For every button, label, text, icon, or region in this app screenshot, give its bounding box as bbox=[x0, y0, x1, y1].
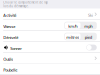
staticText: mph bbox=[84, 23, 92, 29]
button[interactable]: Activité bbox=[0, 8, 100, 20]
button[interactable]: Outils bbox=[0, 53, 100, 63]
staticText: Choisir le comportement de l'ap bbox=[3, 1, 48, 4]
button[interactable]: mph bbox=[80, 22, 96, 29]
button[interactable]: mètres bbox=[65, 33, 80, 40]
staticText: pied bbox=[85, 34, 92, 40]
button[interactable]: Sonner bbox=[0, 42, 100, 53]
staticText: Outils bbox=[3, 56, 13, 62]
button[interactable]: Poubelle bbox=[0, 63, 100, 74]
staticText: Poubelle bbox=[3, 67, 17, 72]
button[interactable]: km/h bbox=[65, 22, 80, 29]
button[interactable]: pied bbox=[80, 33, 96, 40]
staticText: km/h bbox=[68, 23, 77, 29]
staticText: Dénivelé bbox=[3, 35, 18, 40]
staticText: mètres bbox=[66, 34, 79, 40]
button[interactable]: Vitesse bbox=[0, 20, 100, 31]
staticText: Ski bbox=[88, 12, 93, 18]
staticText: lors du démarrage. bbox=[3, 4, 29, 8]
staticText: Activité bbox=[3, 12, 16, 18]
staticText: Vitesse bbox=[3, 24, 15, 29]
staticText: Sonner bbox=[10, 46, 22, 51]
button[interactable]: Dénivelé bbox=[0, 31, 100, 42]
